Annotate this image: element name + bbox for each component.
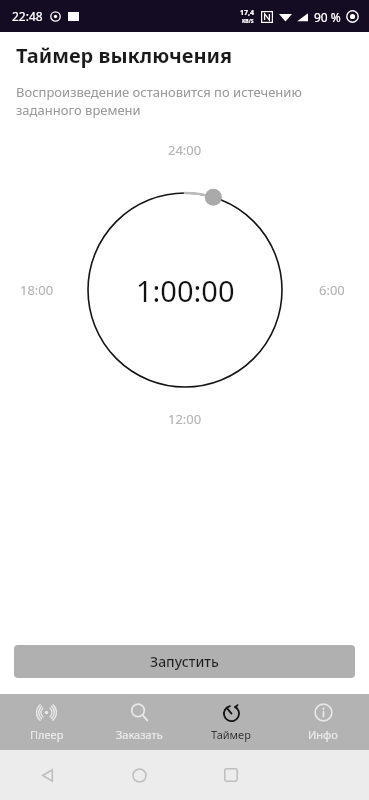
staticText: 90 %	[314, 9, 341, 25]
button[interactable]: Плеер	[0, 694, 93, 750]
staticText: 18:00	[20, 281, 54, 299]
button[interactable]: Заказать	[93, 694, 185, 750]
button[interactable]: Инфо	[277, 694, 369, 750]
staticText: Запустить	[150, 652, 219, 671]
staticText: 24:00	[168, 141, 202, 159]
staticText: Воспроизведение остановится по истечению…	[16, 83, 302, 119]
staticText: KB/S	[242, 18, 254, 25]
button[interactable]: Таймер	[185, 694, 277, 750]
staticText: 17,4	[240, 8, 255, 18]
staticText: Таймер выключения	[16, 42, 233, 69]
staticText: 12:00	[168, 410, 202, 428]
staticText: Таймер	[211, 727, 251, 742]
button[interactable]: Запустить	[14, 645, 355, 678]
staticText: Плеер	[30, 727, 64, 742]
staticText: Заказать	[116, 727, 163, 742]
staticText: Инфо	[308, 727, 338, 742]
staticText: 6:00	[319, 281, 345, 299]
button[interactable]: Home	[122, 758, 156, 792]
button[interactable]: Back	[30, 758, 64, 792]
staticText: 22:48	[12, 8, 43, 24]
staticText: 1:00:00	[136, 271, 235, 310]
button[interactable]: Timer dial	[80, 185, 290, 395]
button[interactable]: Recents	[214, 758, 248, 792]
